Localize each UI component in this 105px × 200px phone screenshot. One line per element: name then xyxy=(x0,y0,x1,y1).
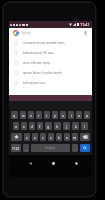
button[interactable]: t xyxy=(44,111,50,119)
button[interactable]: d xyxy=(29,122,35,130)
button[interactable]: Backspace xyxy=(80,133,90,141)
staticText: virus infection symp xyxy=(23,61,50,65)
other: Recent search xyxy=(14,51,18,55)
button[interactable]: b xyxy=(56,133,62,141)
button[interactable]: Home xyxy=(48,158,58,169)
staticText: h xyxy=(56,124,59,129)
staticText: p xyxy=(86,113,89,118)
staticText: . xyxy=(75,146,76,151)
staticText: ?123 xyxy=(12,146,20,151)
staticText: f xyxy=(39,124,41,129)
staticText: bolonia korea 730 case xyxy=(23,51,54,55)
button[interactable]: e xyxy=(28,111,34,119)
button[interactable]: f xyxy=(37,122,43,130)
button[interactable]: y xyxy=(52,111,58,119)
button[interactable]: Search xyxy=(80,144,90,152)
staticText: 11:41 xyxy=(80,22,90,27)
staticText: toilet paper tissu xyxy=(23,81,46,85)
staticText: b xyxy=(58,135,61,140)
button[interactable]: g xyxy=(45,122,52,130)
other: Recent search xyxy=(14,71,18,75)
staticText: z xyxy=(26,135,28,140)
button[interactable]: o xyxy=(76,111,82,119)
button[interactable]: l xyxy=(81,122,88,130)
button[interactable]: Space xyxy=(31,144,70,152)
button[interactable]: Shift xyxy=(11,133,22,141)
staticText: English xyxy=(45,146,56,150)
staticText: e xyxy=(30,113,32,118)
staticText: u xyxy=(62,113,65,118)
button[interactable]: Recent search xyxy=(9,48,92,58)
staticText: t xyxy=(46,113,48,118)
button[interactable]: h xyxy=(54,122,61,130)
button[interactable]: ?123 xyxy=(11,144,21,152)
button[interactable]: Recents xyxy=(71,158,81,169)
other: Recent search xyxy=(14,41,18,45)
staticText: i xyxy=(71,113,72,118)
staticText: k xyxy=(75,124,77,129)
staticText: x xyxy=(34,135,36,140)
other: Voice search xyxy=(84,31,87,36)
staticText: l xyxy=(84,124,85,129)
button[interactable]: Recent search xyxy=(9,68,92,78)
staticText: n xyxy=(66,135,69,140)
staticText: , xyxy=(26,146,27,151)
button[interactable]: Back xyxy=(25,158,35,169)
staticText: Search xyxy=(22,31,32,35)
staticText: y xyxy=(54,113,56,118)
button[interactable]: m xyxy=(72,133,78,141)
button[interactable]: . xyxy=(72,144,78,152)
button[interactable]: z xyxy=(24,133,30,141)
staticText: o xyxy=(78,113,81,118)
staticText: coronavirus new number cases xyxy=(23,41,65,45)
button[interactable]: v xyxy=(48,133,54,141)
button[interactable]: Recent search xyxy=(9,78,92,88)
staticText: g xyxy=(47,124,50,129)
button[interactable]: n xyxy=(64,133,70,141)
button[interactable]: k xyxy=(72,122,79,130)
staticText: spacex falcon 9 rocket launch xyxy=(23,71,63,75)
staticText: s xyxy=(23,124,25,129)
button[interactable]: j xyxy=(63,122,70,130)
staticText: w xyxy=(22,113,25,118)
button[interactable]: Recent search xyxy=(9,38,92,48)
other: Recent search xyxy=(14,81,18,85)
staticText: r xyxy=(38,113,40,118)
button[interactable]: u xyxy=(60,111,66,119)
staticText: c xyxy=(42,135,44,140)
staticText: q xyxy=(13,113,16,118)
button[interactable]: c xyxy=(40,133,46,141)
button[interactable]: q xyxy=(11,111,18,119)
button[interactable]: w xyxy=(20,111,26,119)
button[interactable]: a xyxy=(13,122,19,130)
button[interactable]: i xyxy=(68,111,74,119)
staticText: j xyxy=(66,124,67,129)
staticText: v xyxy=(50,135,52,140)
button[interactable]: Recent search xyxy=(9,58,92,68)
button[interactable]: p xyxy=(84,111,90,119)
button[interactable]: Search xyxy=(9,28,92,38)
button[interactable]: r xyxy=(36,111,42,119)
staticText: m xyxy=(73,135,77,140)
staticText: a xyxy=(15,124,17,129)
button[interactable]: , xyxy=(23,144,29,152)
button[interactable]: x xyxy=(32,133,38,141)
button[interactable]: s xyxy=(21,122,27,130)
other: Recent search xyxy=(14,61,18,65)
staticText: d xyxy=(31,124,34,129)
